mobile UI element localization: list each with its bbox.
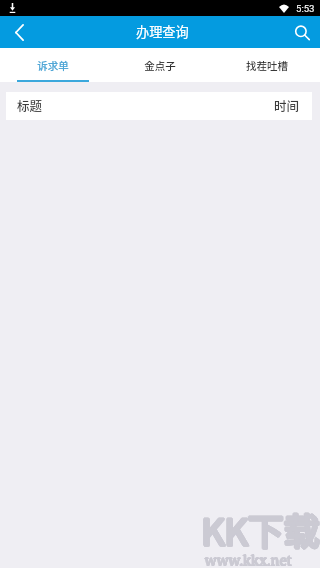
button[interactable]: 金点子 bbox=[106, 48, 213, 82]
staticText: 找茬吐槽 bbox=[246, 58, 288, 73]
button[interactable]: Back bbox=[0, 16, 40, 48]
staticText: KK下载 bbox=[202, 503, 320, 555]
staticText: KK下载 bbox=[201, 503, 320, 555]
staticText: KK下载 bbox=[200, 503, 319, 555]
staticText: www.kkx.net bbox=[205, 551, 292, 568]
button[interactable]: 找茬吐槽 bbox=[213, 48, 320, 82]
staticText: KK下载 bbox=[202, 504, 320, 556]
staticText: KK下载 bbox=[201, 502, 320, 554]
staticText: KK下载 bbox=[201, 503, 320, 555]
staticText: KK下载 bbox=[201, 504, 320, 556]
staticText: 时间 bbox=[274, 96, 300, 114]
staticText: 办理查询 bbox=[136, 22, 189, 41]
staticText: 标题 bbox=[17, 96, 43, 114]
staticText: www.kkx.net bbox=[205, 551, 292, 568]
staticText: www.kkx.net bbox=[205, 551, 292, 568]
staticText: www.kkx.net bbox=[205, 550, 292, 568]
staticText: 诉求单 bbox=[37, 58, 69, 73]
staticText: 金点子 bbox=[144, 58, 176, 73]
staticText: KK下载 bbox=[202, 503, 320, 555]
staticText: www.kkx.net bbox=[204, 551, 291, 568]
button[interactable]: 诉求单 bbox=[0, 48, 106, 82]
staticText: KK下载 bbox=[201, 504, 320, 556]
staticText: 5:53 bbox=[296, 3, 315, 14]
button[interactable]: Search bbox=[280, 16, 320, 48]
